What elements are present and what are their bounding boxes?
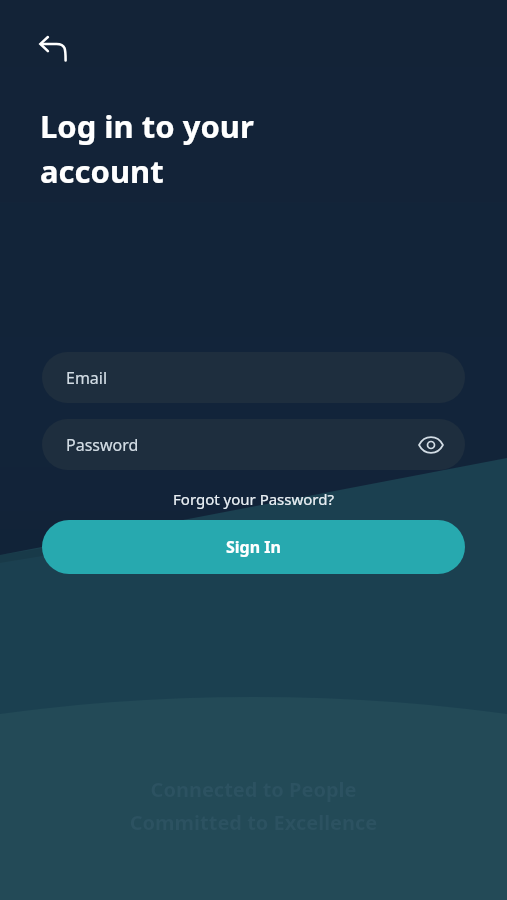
button[interactable]: Email <box>42 352 465 403</box>
staticText: Log in to your account <box>40 105 370 192</box>
button[interactable]: Sign In <box>42 520 465 574</box>
button[interactable]: Show password <box>413 427 449 463</box>
button[interactable]: Back <box>30 26 76 72</box>
staticText: Password <box>66 434 139 456</box>
staticText: Forgot your Password? <box>173 489 334 509</box>
button[interactable]: Forgot your Password? <box>0 484 507 514</box>
staticText: Sign In <box>226 536 281 558</box>
staticText: Email <box>66 367 108 389</box>
button[interactable]: Password <box>42 419 465 470</box>
